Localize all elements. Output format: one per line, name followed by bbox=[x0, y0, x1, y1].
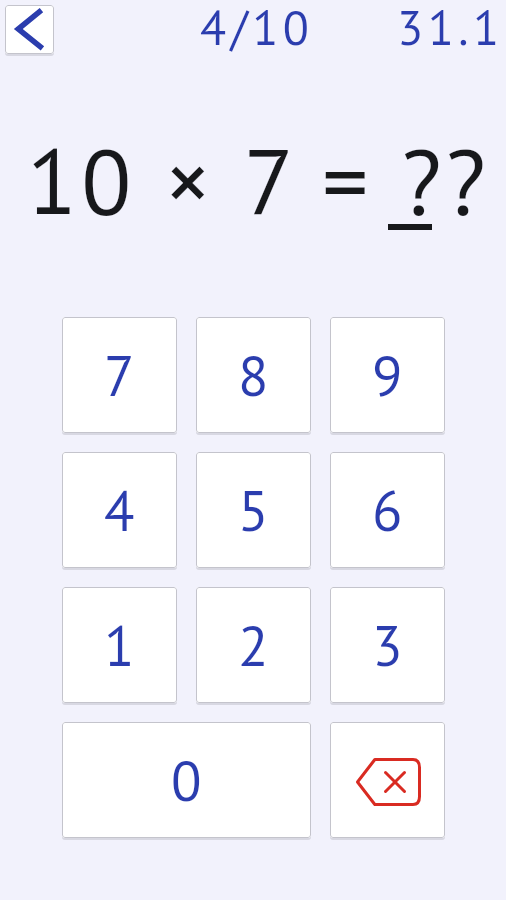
button[interactable]: 9 bbox=[330, 317, 445, 433]
button[interactable]: 1 bbox=[62, 587, 177, 703]
button[interactable]: 2 bbox=[196, 587, 311, 703]
button[interactable] bbox=[330, 722, 445, 838]
staticText: 6 bbox=[372, 474, 403, 546]
staticText: 5 bbox=[238, 474, 269, 546]
staticText: 10 × 7 = ?? bbox=[27, 120, 491, 239]
staticText: 7 bbox=[104, 339, 135, 411]
staticText: 8 bbox=[238, 339, 269, 411]
button[interactable]: 7 bbox=[62, 317, 177, 433]
button[interactable] bbox=[5, 5, 54, 54]
button[interactable]: 4 bbox=[62, 452, 177, 568]
staticText: 4 bbox=[104, 474, 135, 546]
staticText: 31.1 bbox=[397, 0, 504, 56]
staticText: 3 bbox=[372, 609, 403, 681]
button[interactable]: 3 bbox=[330, 587, 445, 703]
button[interactable]: 8 bbox=[196, 317, 311, 433]
staticText: 2 bbox=[238, 609, 269, 681]
staticText: 0 bbox=[171, 744, 202, 816]
button[interactable]: 5 bbox=[196, 452, 311, 568]
staticText: 4/10 bbox=[200, 0, 314, 56]
staticText: 1 bbox=[104, 609, 135, 681]
button[interactable]: 6 bbox=[330, 452, 445, 568]
staticText: 9 bbox=[372, 339, 403, 411]
button[interactable]: 0 bbox=[62, 722, 311, 838]
